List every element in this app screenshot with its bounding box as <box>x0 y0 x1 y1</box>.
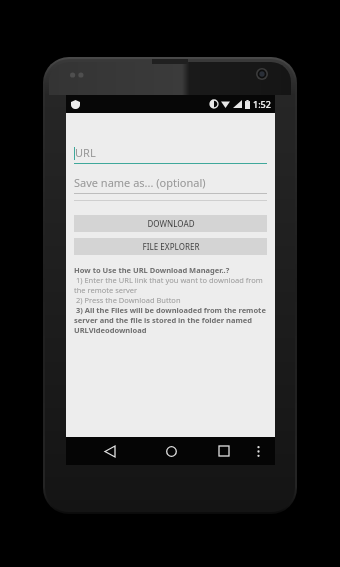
staticText: Save name as... (optional) <box>74 175 206 190</box>
staticText: URL <box>75 145 96 160</box>
staticText: How to Use the URL Download Manager..? <box>74 265 230 275</box>
staticText: 1) Enter the URL link that you want to d… <box>74 275 267 295</box>
button[interactable]: Home <box>160 440 182 462</box>
button[interactable]: Back <box>99 440 121 462</box>
button[interactable]: Save name as... (optional) <box>74 175 267 194</box>
staticText: DOWNLOAD <box>147 218 195 229</box>
button[interactable]: Recent apps <box>213 440 235 462</box>
staticText: FILE EXPLORER <box>142 241 200 252</box>
button[interactable]: FILE EXPLORER <box>74 238 267 255</box>
button[interactable]: URL <box>74 145 267 164</box>
staticText: 1:52 <box>253 98 271 110</box>
button[interactable]: More options <box>249 442 267 460</box>
staticText: 3) All the Files will be downloaded from… <box>74 305 267 335</box>
staticText: 2) Press the Download Button <box>74 295 181 305</box>
button[interactable]: DOWNLOAD <box>74 215 267 232</box>
